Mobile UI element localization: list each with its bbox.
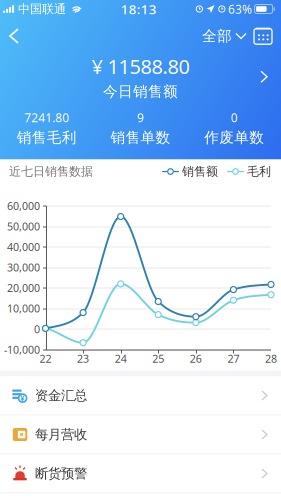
staticText: 10,000 bbox=[7, 301, 40, 316]
staticText: 9 bbox=[137, 110, 144, 125]
staticText: 中国联通 bbox=[18, 2, 66, 16]
staticText: 断货预警 bbox=[35, 465, 87, 482]
staticText: 0 bbox=[231, 110, 238, 125]
staticText: 23 bbox=[77, 351, 89, 366]
staticText: 销售额 bbox=[182, 164, 218, 179]
staticText: 资金汇总 bbox=[35, 387, 87, 404]
staticText: 30,000 bbox=[7, 260, 40, 274]
staticText: 销售毛利 bbox=[17, 128, 77, 146]
staticText: -10,000 bbox=[4, 342, 40, 357]
staticText: 毛利 bbox=[247, 164, 271, 179]
staticText: 50,000 bbox=[7, 219, 40, 233]
button[interactable]: 断货预警 bbox=[0, 454, 281, 493]
staticText: ¥ 11588.80 bbox=[91, 53, 189, 80]
button[interactable]: Calendar bbox=[246, 21, 281, 51]
staticText: 0 bbox=[34, 322, 40, 336]
staticText: 全部 bbox=[202, 27, 232, 45]
staticText: 销售单数 bbox=[110, 128, 170, 146]
button[interactable]: ¥ bbox=[0, 376, 281, 415]
staticText: ¥ bbox=[20, 393, 25, 403]
button[interactable]: ¥ 11588.80 bbox=[0, 51, 281, 110]
staticText: 每月营收 bbox=[35, 426, 87, 443]
staticText: 25 bbox=[152, 351, 164, 366]
staticText: 28 bbox=[265, 351, 277, 366]
staticText: 40,000 bbox=[7, 240, 40, 254]
staticText: 24 bbox=[115, 351, 127, 366]
staticText: 7241.80 bbox=[24, 110, 69, 125]
button[interactable]: 全部 bbox=[192, 21, 246, 51]
staticText: 20,000 bbox=[7, 281, 40, 295]
button[interactable]: 每月营收 bbox=[0, 415, 281, 454]
button[interactable]: Back bbox=[0, 21, 32, 51]
staticText: 63% bbox=[228, 1, 252, 17]
staticText: 近七日销售数据 bbox=[9, 164, 93, 179]
staticText: 60,000 bbox=[7, 199, 40, 213]
staticText: 26 bbox=[190, 351, 202, 366]
staticText: 22 bbox=[39, 351, 51, 366]
staticText: 18:13 bbox=[121, 0, 157, 18]
staticText: 作废单数 bbox=[204, 128, 264, 146]
staticText: 27 bbox=[227, 351, 239, 366]
staticText: 今日销售额 bbox=[103, 83, 178, 101]
